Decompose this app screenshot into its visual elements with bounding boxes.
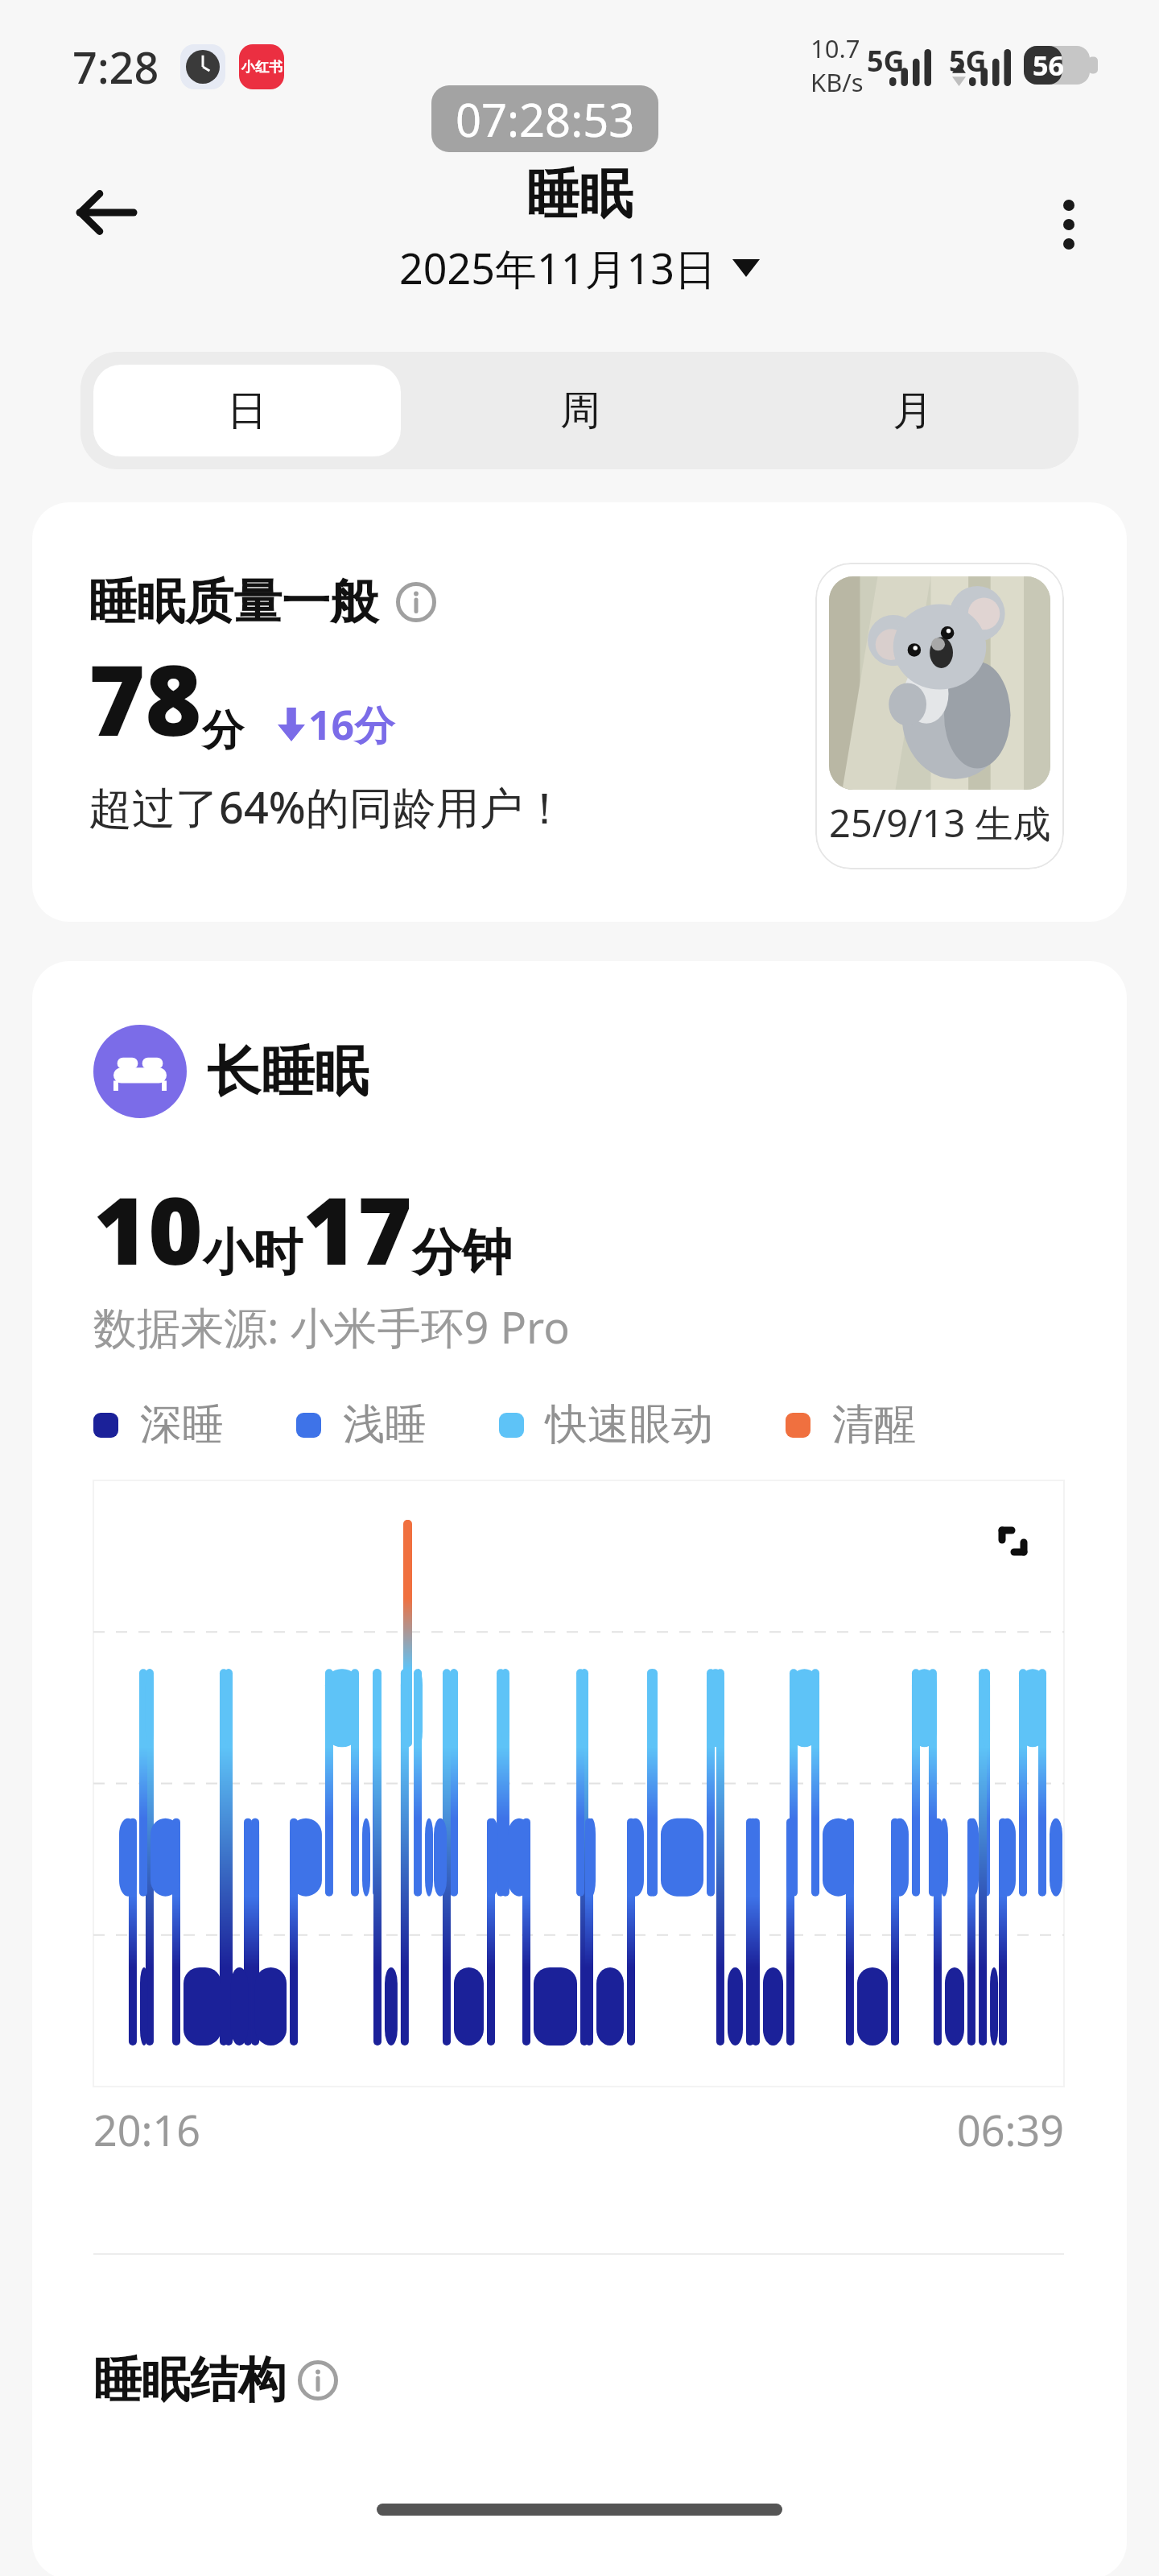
staticText: 月 xyxy=(893,386,933,436)
staticText: 10.7 xyxy=(810,31,860,65)
staticText: 小时 xyxy=(203,1221,303,1284)
staticText: 17 xyxy=(303,1165,412,1292)
staticText: 长睡眠 xyxy=(207,1038,369,1105)
button[interactable]: More options xyxy=(1013,168,1125,281)
staticText: 06:39 xyxy=(957,2101,1064,2158)
staticText: 快速眼动 xyxy=(546,1398,713,1451)
button[interactable]: Expand chart xyxy=(980,1509,1046,1574)
staticText: 78 xyxy=(89,633,202,764)
button[interactable]: 25/9/13 生成 xyxy=(815,563,1064,869)
button[interactable]: 睡眠质量一般 xyxy=(32,502,1127,922)
staticText: 10 xyxy=(93,1165,203,1292)
staticText: KB/s xyxy=(810,65,864,99)
staticText: 深睡 xyxy=(140,1398,224,1451)
staticText: 2025年11月13日 xyxy=(399,239,716,296)
staticText: 5G xyxy=(867,41,905,80)
button[interactable]: 2025年11月13日 xyxy=(399,239,760,296)
staticText: 超过了64%的同龄用户！ xyxy=(89,777,567,836)
staticText: 清醒 xyxy=(832,1398,916,1451)
staticText: 分钟 xyxy=(412,1221,512,1284)
staticText: 5G xyxy=(949,41,987,80)
button[interactable]: 日 xyxy=(93,365,401,456)
staticText: 分 xyxy=(202,704,244,758)
staticText: 56 xyxy=(1033,47,1064,84)
staticText: 7:28 xyxy=(72,37,159,97)
button[interactable]: Back xyxy=(49,156,162,269)
button[interactable]: 周 xyxy=(427,365,733,456)
staticText: 周 xyxy=(560,386,600,436)
staticText: 数据来源: 小米手环9 Pro xyxy=(93,1297,571,1356)
staticText: 睡眠 xyxy=(526,161,633,228)
staticText: 20:16 xyxy=(93,2101,200,2158)
staticText: 07:28:53 xyxy=(456,89,635,150)
staticText: 睡眠结构 xyxy=(93,2350,287,2411)
staticText: 25/9/13 生成 xyxy=(829,797,1051,848)
staticText: 日 xyxy=(227,386,267,436)
staticText: 睡眠质量一般 xyxy=(89,572,378,633)
staticText: 16分 xyxy=(308,697,395,752)
button[interactable]: 月 xyxy=(759,365,1066,456)
staticText: 浅睡 xyxy=(343,1398,427,1451)
staticText: 小红书 xyxy=(241,59,283,76)
